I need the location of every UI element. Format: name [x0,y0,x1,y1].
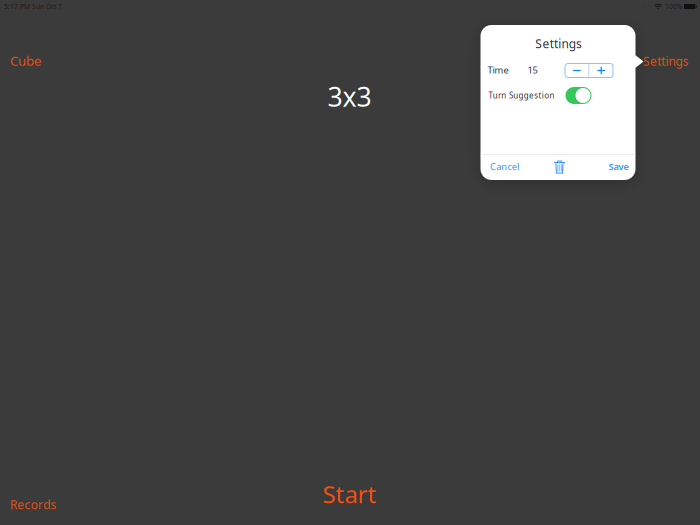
button[interactable]: Delete [547,157,571,177]
staticText: 3x3 [327,79,371,114]
staticText: Sun Oct 7 [32,2,62,11]
button[interactable]: Increase [589,63,613,77]
staticText: Turn Suggestion [488,90,554,101]
staticText: 5:17 PM [4,2,30,11]
staticText: Save [608,160,628,173]
button[interactable]: Decrease [565,63,588,77]
staticText: Cube [10,52,42,69]
button[interactable]: Start [304,479,394,509]
staticText: Settings [643,53,689,69]
button[interactable]: Save [594,156,628,176]
staticText: 15 [527,64,537,76]
staticText: Settings [535,35,582,51]
staticText: Records [10,496,56,512]
staticText: Start [322,478,376,510]
staticText: Time [487,64,508,76]
button[interactable]: Settings [643,50,691,72]
button[interactable]: Cube [0,49,60,71]
staticText: Cancel [490,160,519,173]
staticText: 100% [665,2,683,11]
button[interactable]: Records [0,493,66,515]
button[interactable]: Cancel [490,156,530,176]
button[interactable]: Turn Suggestion [565,87,591,104]
